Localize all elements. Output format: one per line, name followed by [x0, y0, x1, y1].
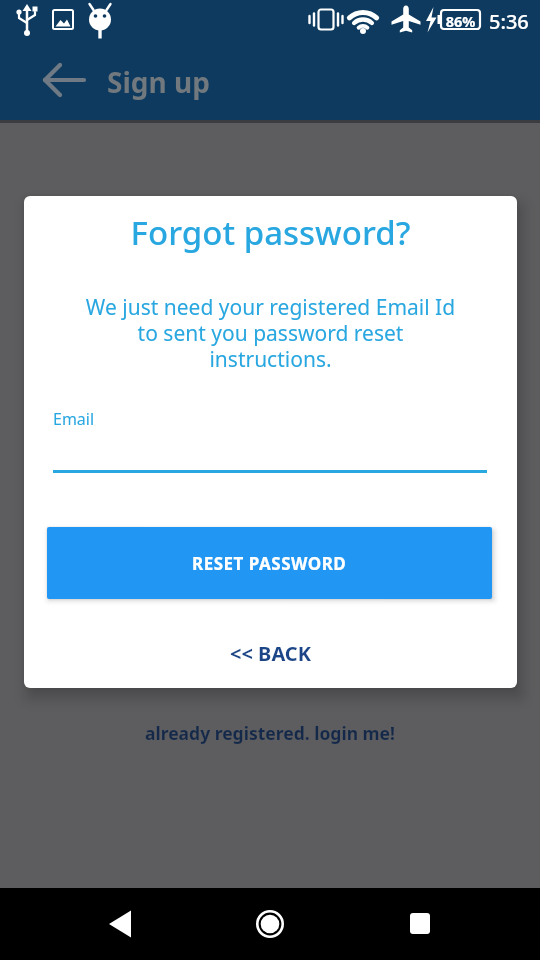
button[interactable]: << BACK — [200, 630, 340, 676]
button[interactable] — [390, 894, 450, 954]
button[interactable] — [0, 42, 100, 120]
staticText: Forgot password? — [24, 210, 517, 255]
staticText: << BACK — [230, 640, 311, 667]
staticText: We just need your registered Email Id to… — [24, 293, 517, 374]
button[interactable] — [240, 894, 300, 954]
button[interactable]: already registered. login me! — [0, 721, 540, 745]
button[interactable]: RESET PASSWORD — [47, 527, 492, 599]
staticText: 86% — [441, 11, 480, 31]
staticText: 5:36 — [489, 8, 529, 35]
staticText: Sign up — [107, 63, 210, 101]
staticText: Email — [53, 408, 95, 430]
button[interactable] — [94, 894, 154, 954]
staticText: RESET PASSWORD — [192, 552, 347, 575]
